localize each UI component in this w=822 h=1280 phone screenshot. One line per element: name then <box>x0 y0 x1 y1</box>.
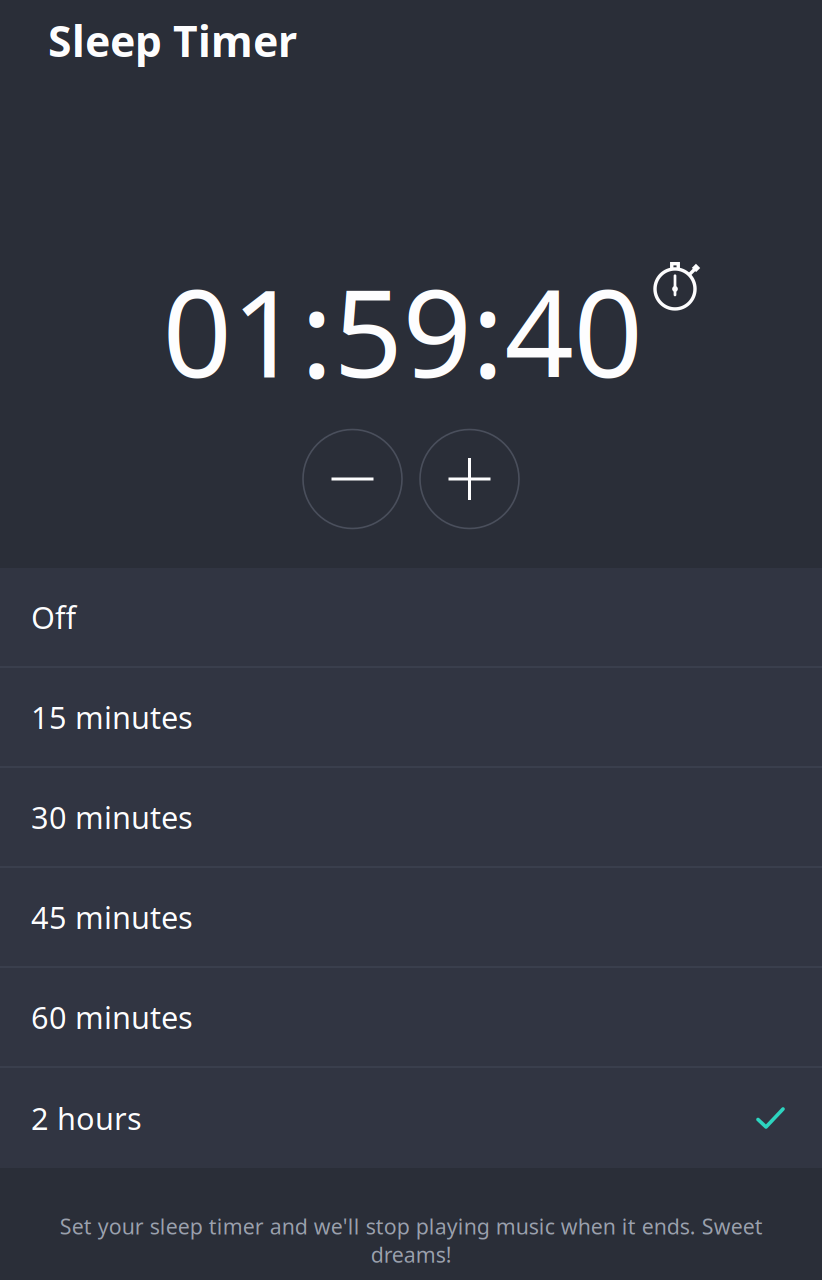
staticText: 60 minutes <box>31 997 193 1037</box>
button[interactable]: 45 minutes <box>0 868 822 968</box>
button[interactable]: 15 minutes <box>0 668 822 768</box>
staticText: 45 minutes <box>31 897 193 937</box>
staticText: Off <box>31 597 76 637</box>
button[interactable]: 60 minutes <box>0 968 822 1068</box>
staticText: 01:59:40 <box>162 250 642 411</box>
button[interactable]: 2 hours <box>0 1068 822 1168</box>
button[interactable]: Decrease <box>303 429 402 528</box>
button[interactable]: Off <box>0 568 822 668</box>
staticText: 30 minutes <box>31 797 193 837</box>
staticText: Sleep Timer <box>48 12 297 69</box>
button[interactable]: Increase <box>420 429 519 528</box>
staticText: 15 minutes <box>31 697 193 737</box>
button[interactable]: 30 minutes <box>0 768 822 868</box>
staticText: Set your sleep timer and we'll stop play… <box>59 1212 762 1269</box>
staticText: 2 hours <box>31 1098 142 1138</box>
